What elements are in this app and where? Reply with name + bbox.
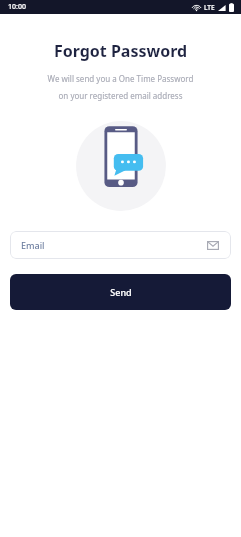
staticText: LTE: [204, 3, 215, 12]
other: Email: [206, 238, 220, 252]
staticText: on your registered email address: [0, 90, 241, 101]
staticText: 10:00: [8, 2, 26, 12]
button[interactable]: Send: [10, 274, 231, 310]
staticText: Email: [21, 239, 45, 251]
staticText: We will send you a One Time Password: [0, 73, 241, 84]
staticText: Forgot Password: [0, 40, 241, 62]
button[interactable]: Email: [10, 231, 231, 259]
staticText: Send: [110, 286, 132, 298]
